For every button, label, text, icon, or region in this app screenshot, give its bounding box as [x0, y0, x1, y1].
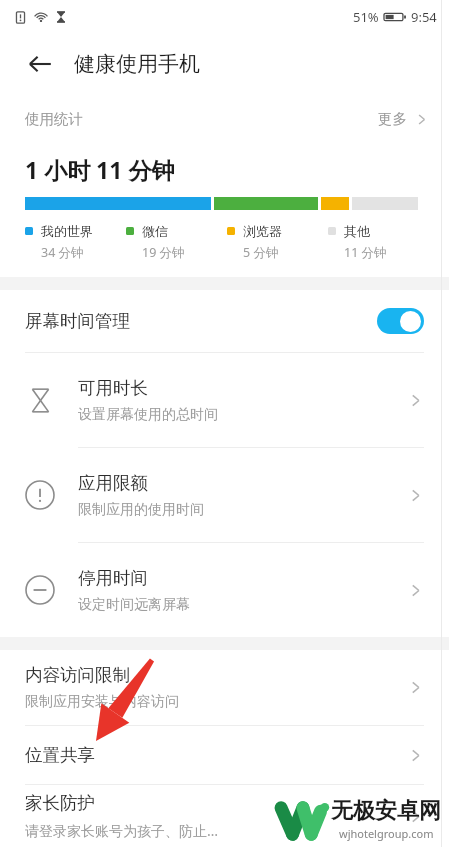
staticText: 使用统计 [25, 110, 83, 128]
staticText: 位置共享 [25, 744, 95, 766]
staticText: 请登录家长账号为孩子、防止… [25, 821, 219, 840]
button[interactable]: 停用时间 [0, 543, 449, 637]
button[interactable]: 屏幕时间管理 [0, 290, 449, 352]
staticText: 1 小时 11 分钟 [25, 154, 175, 185]
staticText: 34 分钟 [41, 244, 84, 261]
staticText: 51% [353, 8, 379, 26]
staticText: 限制应用安装与内容访问 [25, 693, 179, 711]
staticText: 无极安卓网 [331, 797, 441, 825]
staticText: 家长防护 [25, 792, 95, 814]
button[interactable]: 返回 [22, 46, 58, 82]
staticText: 11 分钟 [344, 244, 387, 261]
staticText: 浏览器 [243, 223, 282, 239]
staticText: 我的世界 [41, 223, 93, 239]
button[interactable]: 可用时长 [0, 353, 449, 447]
staticText: 其他 [344, 223, 370, 239]
staticText: 微信 [142, 223, 168, 239]
staticText: 限制应用的使用时间 [78, 501, 204, 519]
staticText: wjhotelgroup.com [339, 826, 434, 841]
staticText: 5 分钟 [243, 244, 279, 261]
button[interactable]: 应用限额 [0, 448, 449, 542]
staticText: 应用限额 [78, 472, 148, 494]
staticText: 更多 [378, 110, 407, 128]
staticText: 设置屏幕使用的总时间 [78, 406, 218, 424]
staticText: 内容访问限制 [25, 664, 130, 686]
staticText: 可用时长 [78, 377, 148, 399]
staticText: 9:54 [411, 8, 437, 26]
staticText: 健康使用手机 [74, 51, 200, 77]
staticText: 设定时间远离屏幕 [78, 596, 190, 614]
button[interactable]: 使用统计 [0, 94, 449, 144]
button[interactable]: 内容访问限制 [0, 650, 449, 725]
staticText: 屏幕时间管理 [25, 310, 130, 332]
staticText: 19 分钟 [142, 244, 185, 261]
staticText: 停用时间 [78, 567, 148, 589]
button[interactable]: 位置共享 [0, 726, 449, 784]
button[interactable]: 家长防护 [0, 785, 449, 847]
button[interactable]: 屏幕时间管理开关 [377, 308, 424, 334]
